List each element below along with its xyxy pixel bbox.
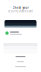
staticText: security dashboard [8, 9, 33, 13]
staticText: Check your [12, 6, 28, 9]
